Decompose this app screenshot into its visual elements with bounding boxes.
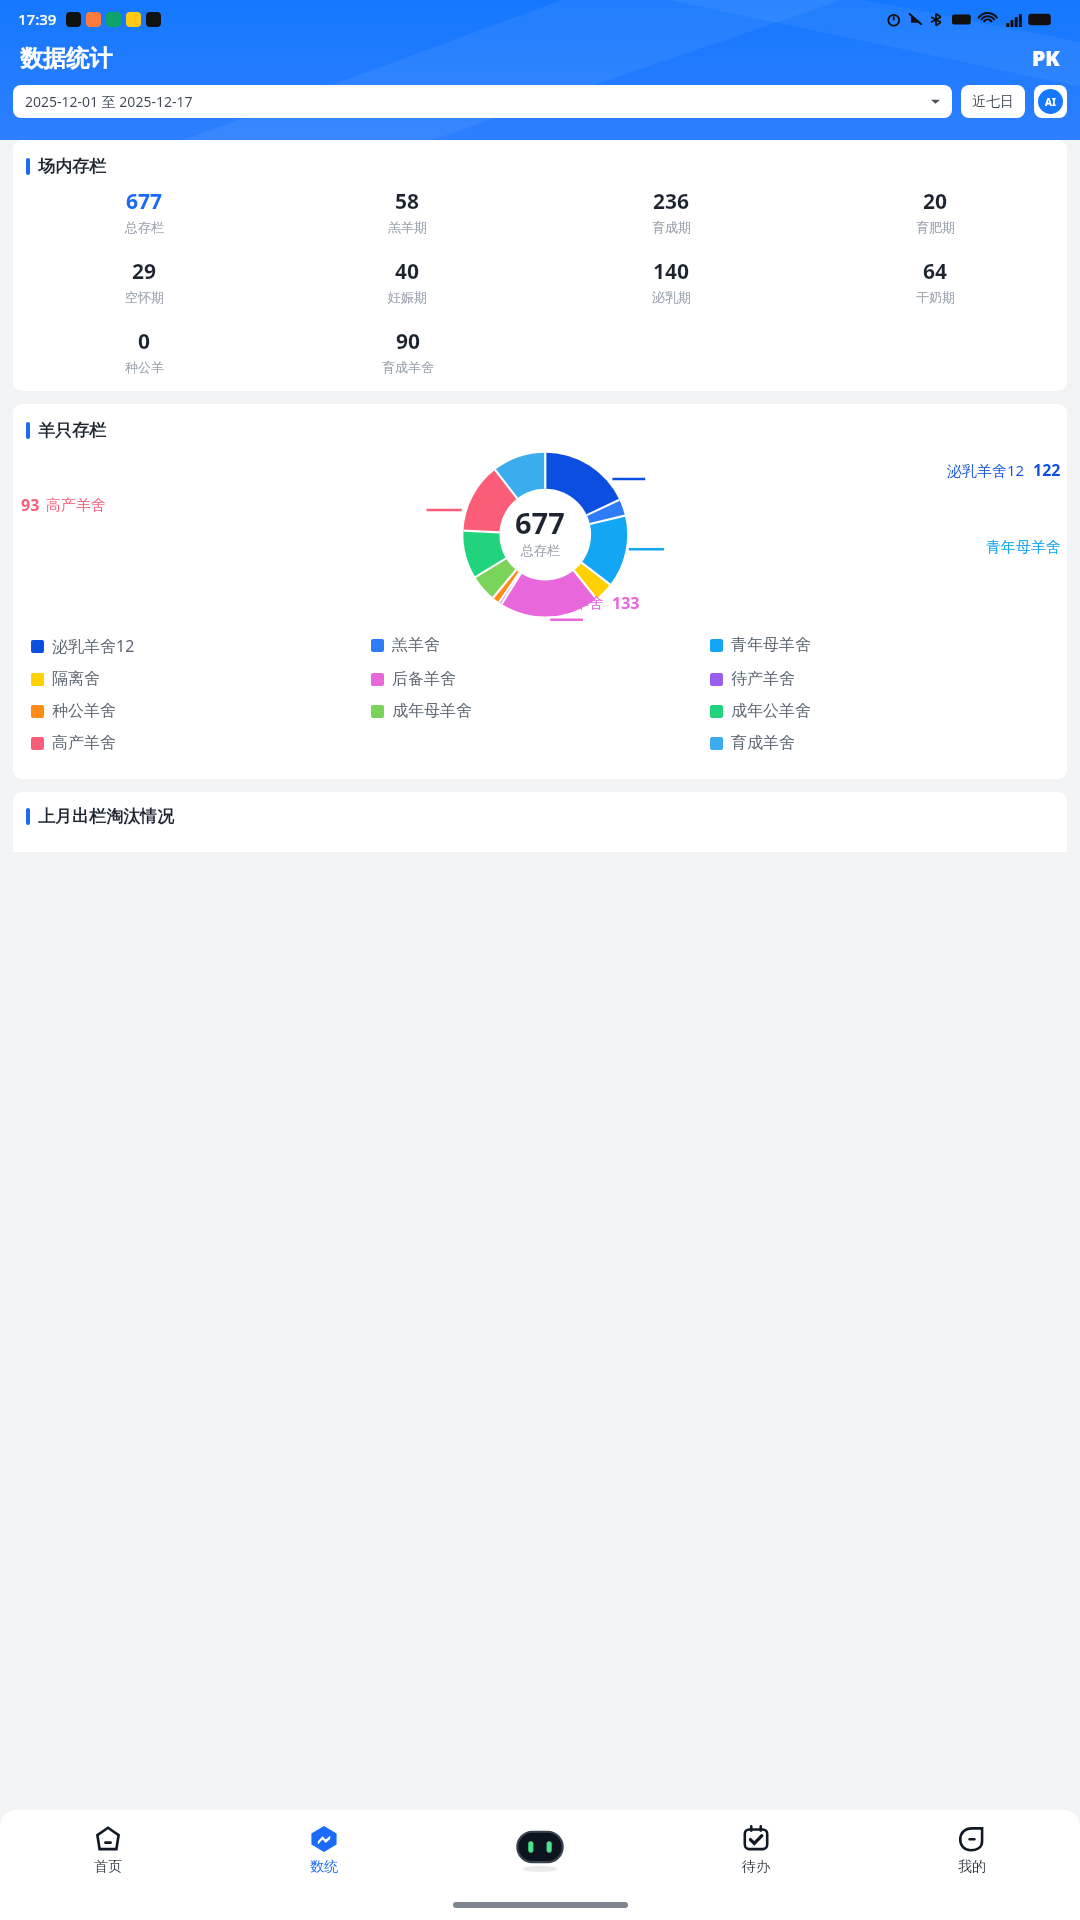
staticText: 20	[923, 187, 948, 216]
staticText: 育肥期	[916, 219, 955, 235]
staticText: 64	[923, 257, 948, 286]
staticText: 90	[396, 327, 421, 356]
staticText: 高产羊舍	[52, 733, 116, 753]
staticText: 泌乳羊舍12	[52, 635, 135, 657]
button[interactable]: 首页	[0, 1810, 216, 1890]
staticText: 上月出栏淘汰情况	[38, 806, 174, 827]
staticText: 青年母羊舍	[986, 538, 1061, 557]
staticText: 泌乳期	[652, 289, 691, 305]
button[interactable]: AI	[1034, 85, 1067, 118]
button[interactable]: AI 助手	[432, 1810, 648, 1890]
staticText: 高产羊舍	[46, 496, 106, 515]
staticText: 677	[126, 187, 163, 216]
button[interactable]: 我的	[864, 1810, 1080, 1890]
staticText: 677	[515, 503, 565, 542]
staticText: 成年母羊舍	[392, 701, 472, 721]
staticText: 育成羊舍	[731, 733, 795, 753]
staticText: 首页	[94, 1858, 122, 1876]
staticText: 0	[138, 327, 151, 356]
staticText: 青年母羊舍	[731, 635, 811, 655]
button[interactable]: 数统	[216, 1810, 432, 1890]
staticText: 隔离舍	[52, 669, 100, 689]
staticText: 干奶期	[916, 289, 955, 305]
staticText: 133	[612, 592, 640, 614]
staticText: 羊只存栏	[38, 420, 106, 441]
staticText: 待产羊舍	[731, 669, 795, 689]
staticText: 40	[395, 257, 420, 286]
staticText: 种公羊舍	[52, 701, 116, 721]
staticText: 泌乳羊舍12	[947, 460, 1025, 480]
staticText: 总存栏	[521, 542, 560, 558]
staticText: 29	[132, 257, 157, 286]
button[interactable]: 2025-12-01 至 2025-12-17	[13, 85, 952, 118]
staticText: 成年公羊舍	[731, 701, 811, 721]
staticText: 种公羊	[125, 359, 164, 375]
staticText: 后备羊舍	[392, 669, 456, 689]
staticText: 2025-12-01 至 2025-12-17	[25, 92, 193, 111]
staticText: 羔羊舍	[392, 635, 440, 655]
staticText: 93	[21, 494, 40, 516]
staticText: 我的	[958, 1858, 986, 1876]
staticText: 122	[1033, 459, 1061, 481]
staticText: 近七日	[972, 93, 1014, 111]
staticText: 17:39	[18, 9, 57, 29]
staticText: 后备羊舍	[544, 594, 604, 613]
staticText: 育成羊舍	[382, 359, 434, 375]
staticText: 140	[653, 257, 690, 286]
button[interactable]: 近七日	[961, 85, 1025, 118]
staticText: 空怀期	[125, 289, 164, 305]
staticText: 总存栏	[125, 219, 164, 235]
staticText: PK	[1032, 44, 1060, 73]
staticText: 场内存栏	[38, 156, 106, 177]
staticText: AI	[1045, 95, 1056, 109]
staticText: 妊娠期	[388, 289, 427, 305]
button[interactable]: 待办	[648, 1810, 864, 1890]
staticText: 育成期	[652, 219, 691, 235]
staticText: 236	[653, 187, 690, 216]
staticText: 羔羊期	[388, 219, 427, 235]
staticText: 待办	[742, 1858, 770, 1876]
staticText: 数统	[310, 1858, 338, 1876]
button[interactable]: PK	[1032, 44, 1060, 73]
staticText: 58	[395, 187, 420, 216]
staticText: 数据统计	[20, 44, 112, 73]
